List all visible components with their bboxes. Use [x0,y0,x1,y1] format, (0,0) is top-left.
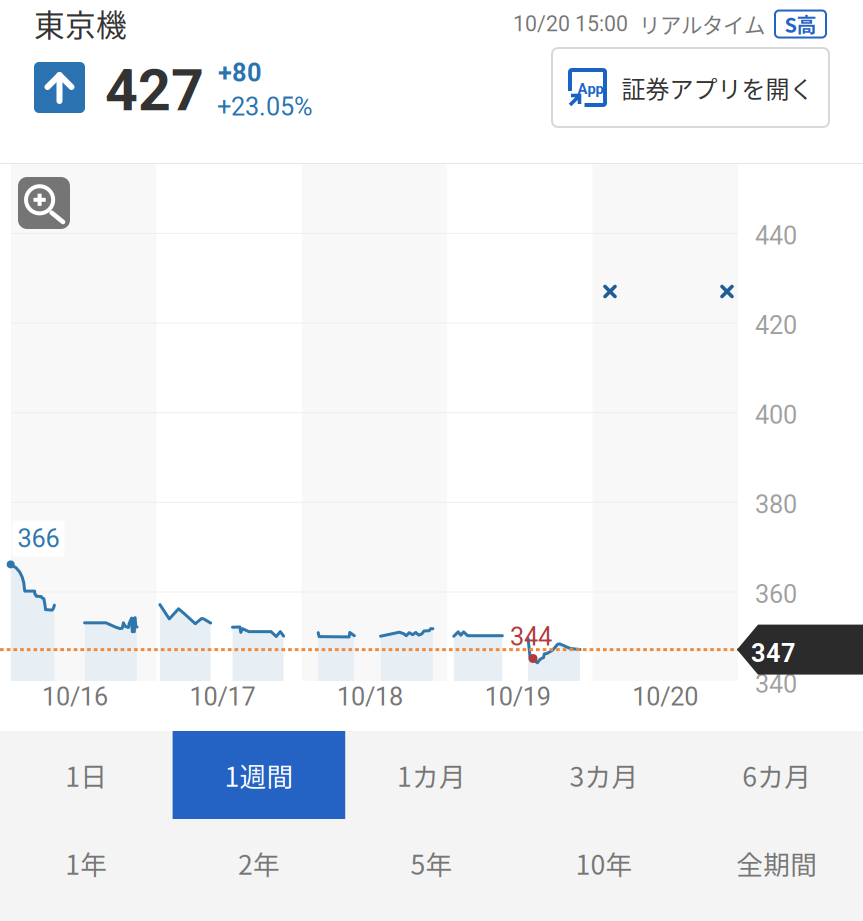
button[interactable]: App [552,48,829,127]
staticText: 10/19 [485,682,551,712]
staticText: 1カ月 [397,756,466,794]
staticText: +23.05% [217,92,313,122]
staticText: App [577,80,603,98]
staticText: 10/20 [632,682,698,712]
staticText: 340 [755,669,797,699]
staticText: 400 [755,400,797,430]
staticText: 10/17 [189,682,255,712]
button[interactable]: Zoom in [18,177,70,229]
staticText: 2年 [238,844,280,882]
staticText: 10/20 15:00 [513,11,628,36]
staticText: 344 [510,622,552,652]
staticText: 427 [105,57,204,124]
staticText: S高 [784,9,816,38]
staticText: 5年 [410,844,452,882]
staticText: 証券アプリを開く [621,70,813,105]
button[interactable]: 2年 [173,819,345,907]
button[interactable]: 1週間 [173,731,345,819]
staticText: +80 [218,58,262,88]
staticText: 東京機 [34,1,127,45]
staticText: 1週間 [224,756,293,794]
staticText: 全期間 [736,844,817,882]
button[interactable]: 5年 [345,819,518,907]
staticText: 420 [755,311,797,340]
button[interactable]: 3カ月 [518,731,690,819]
staticText: 10/16 [42,682,108,712]
button[interactable]: 全期間 [690,819,863,907]
staticText: リアルタイム [639,9,765,39]
button[interactable]: 1カ月 [345,731,518,819]
staticText: 10年 [576,844,633,882]
staticText: 6カ月 [742,756,811,794]
button[interactable]: 6カ月 [690,731,863,819]
staticText: 380 [755,490,797,520]
staticText: 440 [755,221,797,251]
button[interactable]: 10年 [518,819,690,907]
staticText: 3カ月 [570,756,639,794]
staticText: 347 [751,639,796,668]
staticText: 1年 [65,844,107,882]
staticText: 1日 [65,756,107,794]
staticText: 360 [755,579,797,609]
button[interactable]: 1日 [0,731,173,819]
staticText: 10/18 [337,682,403,712]
button[interactable]: 1年 [0,819,173,907]
staticText: 366 [17,524,59,554]
